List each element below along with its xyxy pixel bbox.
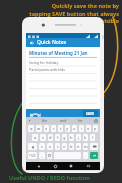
- button[interactable]: l: [90, 134, 95, 141]
- staticText: m: [84, 144, 88, 149]
- staticText: Useful UNDO / REDO function: [9, 174, 90, 181]
- button[interactable]: z: [39, 143, 45, 150]
- staticText: for: [78, 118, 83, 123]
- button[interactable]: ?123: [28, 152, 37, 159]
- staticText: a: [34, 135, 37, 140]
- button[interactable]: ,: [39, 152, 45, 159]
- button[interactable]: s: [40, 134, 46, 141]
- button[interactable]: Enter: [90, 152, 98, 159]
- staticText: the: [42, 118, 48, 123]
- staticText: Quickly save the note by: [51, 2, 119, 9]
- staticText: j: [78, 135, 80, 140]
- staticText: t: [60, 126, 62, 131]
- staticText: c: [57, 144, 59, 149]
- staticText: f: [57, 135, 59, 140]
- button[interactable]: .: [83, 152, 88, 159]
- staticText: e: [45, 126, 48, 131]
- staticText: ?123: [29, 154, 36, 158]
- staticText: w: [37, 126, 41, 131]
- button[interactable]: w: [36, 125, 42, 132]
- staticText: k: [84, 135, 87, 140]
- button[interactable]: SAVE: [83, 110, 98, 117]
- button[interactable]: t: [58, 125, 63, 132]
- staticText: .: [85, 153, 87, 158]
- button[interactable]: p: [93, 125, 98, 132]
- button[interactable]: [28, 143, 37, 150]
- button[interactable]: Undo: [28, 110, 35, 116]
- button[interactable]: [47, 152, 52, 159]
- staticText: y: [66, 126, 69, 131]
- staticText: n: [77, 144, 80, 149]
- button[interactable]: j: [76, 134, 81, 141]
- staticText: l: [92, 135, 94, 140]
- button[interactable]: x: [47, 143, 53, 150]
- staticText: and: [60, 118, 67, 123]
- staticText: tapping SAVE button that always visible: [27, 10, 119, 24]
- staticText: o: [87, 126, 90, 131]
- button[interactable]: e: [44, 125, 49, 132]
- staticText: x: [49, 144, 52, 149]
- button[interactable]: o: [86, 125, 91, 132]
- button[interactable]: Keyboard: [84, 162, 92, 170]
- staticText: Participants with kids: [29, 67, 65, 72]
- button[interactable]: Redo: [36, 110, 43, 116]
- staticText: s: [42, 135, 44, 140]
- button[interactable]: [90, 143, 98, 150]
- button[interactable]: a: [32, 134, 38, 141]
- button[interactable]: q: [28, 125, 34, 132]
- button[interactable]: c: [55, 143, 60, 150]
- button[interactable]: m: [83, 143, 88, 150]
- staticText: p: [94, 126, 97, 131]
- button[interactable]: b: [69, 143, 74, 150]
- staticText: r: [53, 126, 55, 131]
- staticText: u: [73, 126, 76, 131]
- button[interactable]: y: [65, 125, 70, 132]
- button[interactable]: k: [83, 134, 88, 141]
- button[interactable]: h: [69, 134, 74, 141]
- staticText: b: [70, 144, 73, 149]
- staticText: g: [63, 135, 66, 140]
- staticText: Quick Notes: [37, 39, 67, 46]
- staticText: SAVE: [86, 111, 95, 116]
- button[interactable]: Back: [28, 39, 35, 46]
- button[interactable]: r: [51, 125, 56, 132]
- staticText: i: [81, 126, 83, 131]
- staticText: Going for holiday: [29, 60, 59, 65]
- button[interactable]: i: [79, 125, 84, 132]
- staticText: ,: [41, 153, 43, 158]
- button[interactable]: d: [48, 134, 53, 141]
- button[interactable]: n: [76, 143, 81, 150]
- button[interactable]: Recents: [67, 162, 75, 170]
- staticText: Minutes of Meeting 21 Jan: [29, 50, 88, 56]
- staticText: z: [41, 144, 43, 149]
- staticText: h: [70, 135, 73, 140]
- button[interactable]: Home: [51, 162, 59, 170]
- staticText: q: [30, 126, 33, 131]
- staticText: v: [63, 144, 66, 149]
- button[interactable]: Back: [34, 162, 42, 170]
- staticText: d: [49, 135, 52, 140]
- button[interactable]: f: [55, 134, 60, 141]
- button[interactable]: v: [62, 143, 67, 150]
- button[interactable]: u: [72, 125, 77, 132]
- button[interactable]: g: [62, 134, 67, 141]
